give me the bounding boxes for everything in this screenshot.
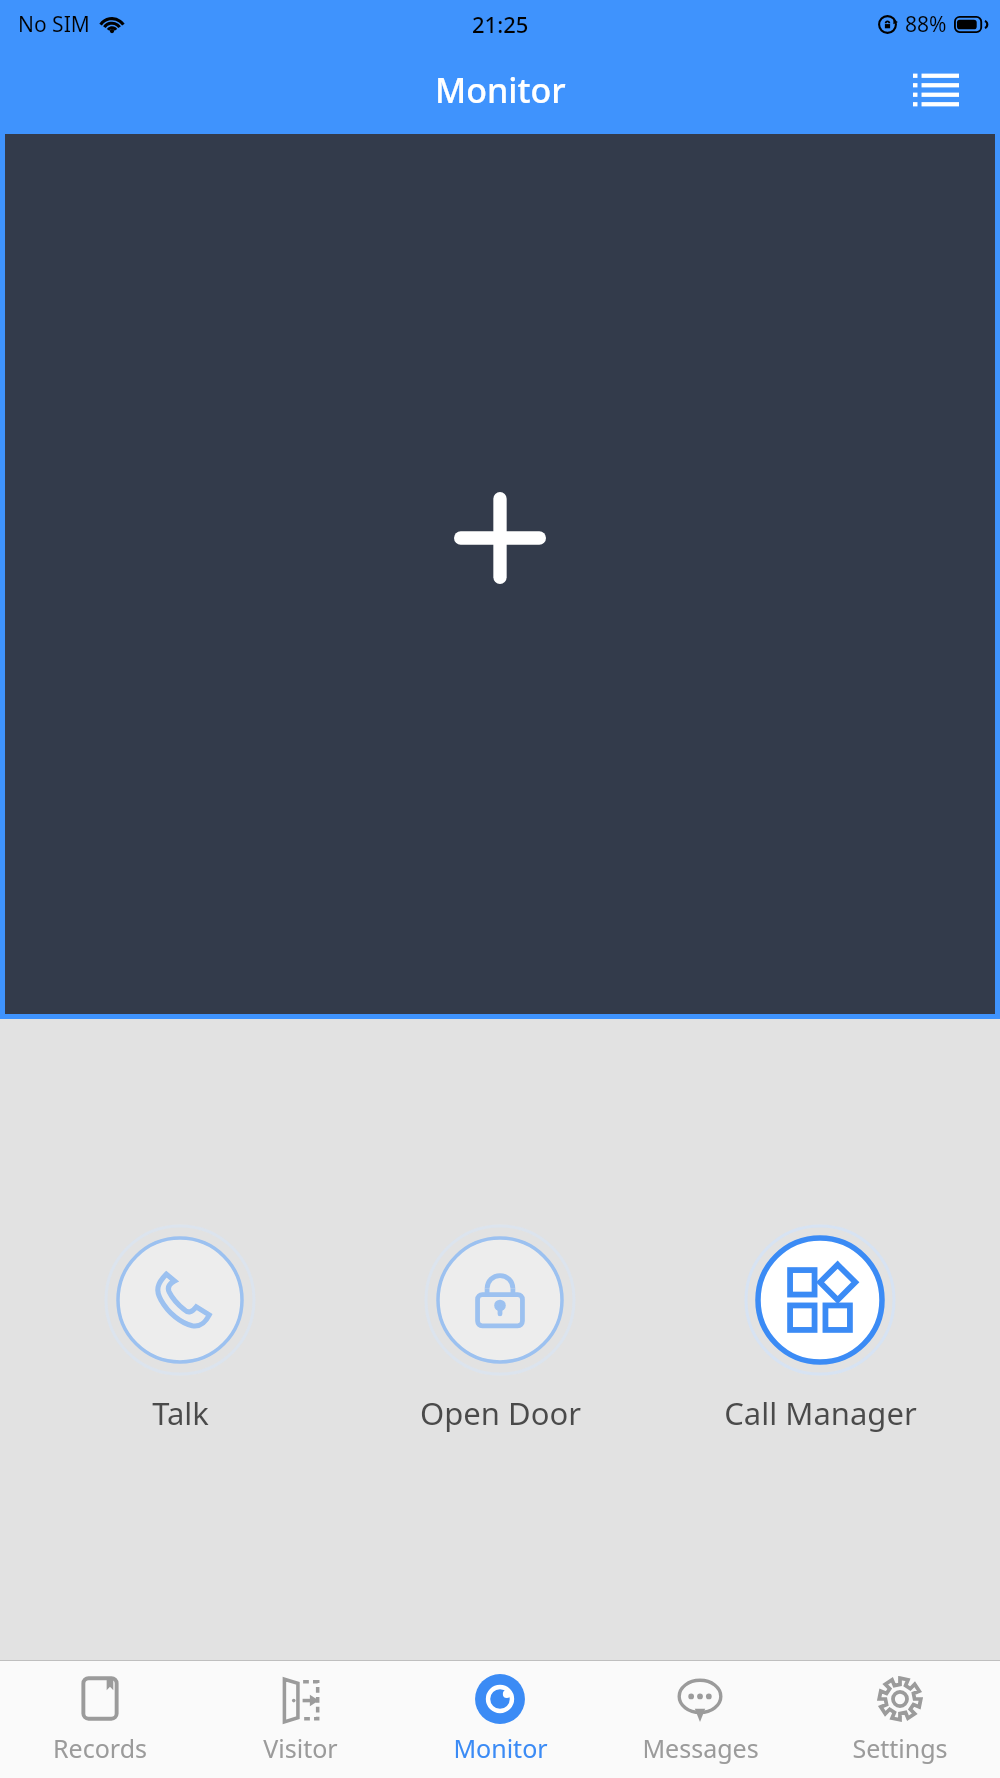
button[interactable]: Call Manager [670, 1224, 970, 1434]
staticText: Call Manager [724, 1392, 917, 1434]
button[interactable]: List [904, 58, 968, 122]
staticText: 21:25 [472, 9, 529, 39]
button[interactable]: Records [0, 1661, 200, 1778]
staticText: Talk [152, 1392, 209, 1434]
button[interactable]: Talk [30, 1224, 330, 1434]
staticText: Monitor [435, 67, 566, 113]
staticText: Settings [852, 1731, 948, 1765]
staticText: Records [53, 1731, 147, 1765]
button[interactable]: Monitor [400, 1661, 600, 1778]
button[interactable]: Visitor [200, 1661, 400, 1778]
button[interactable]: Add camera [5, 134, 995, 1014]
staticText: Monitor [453, 1731, 548, 1765]
button[interactable]: Settings [800, 1661, 1000, 1778]
staticText: Visitor [263, 1731, 338, 1765]
button[interactable]: Open Door [350, 1224, 650, 1434]
staticText: Messages [642, 1731, 759, 1765]
staticText: 88% [905, 10, 947, 39]
button[interactable]: Messages [600, 1661, 800, 1778]
staticText: Open Door [420, 1392, 581, 1434]
staticText: No SIM [18, 10, 90, 39]
